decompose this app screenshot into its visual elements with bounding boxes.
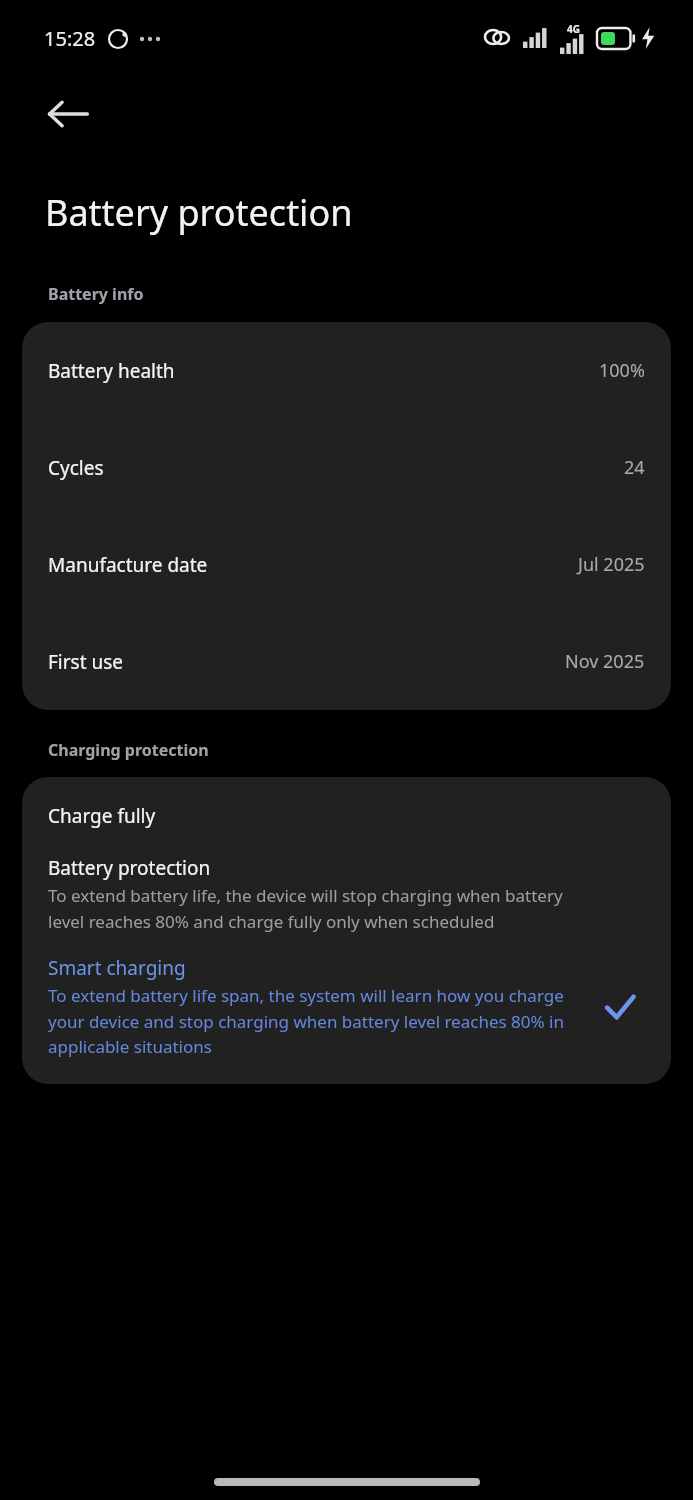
button[interactable]: Manufacture date [22,516,671,613]
staticText: Battery health [48,358,175,384]
button[interactable]: Smart charging [22,955,671,1058]
staticText: 100% [599,358,645,383]
staticText: Jul 2025 [578,552,645,577]
button[interactable]: Charge fully [22,777,671,855]
staticText: Smart charging [48,955,186,981]
staticText: To extend battery life, the device will … [48,884,589,933]
staticText: Charge fully [48,803,156,829]
staticText: 24 [624,455,645,480]
button[interactable]: Back [30,76,106,152]
staticText: Manufacture date [48,552,208,578]
button[interactable]: Cycles [22,419,671,516]
staticText: Nov 2025 [565,649,645,674]
staticText: 4G [567,22,580,36]
staticText: 15:28 [44,25,96,52]
staticText: To extend battery life span, the system … [48,984,589,1058]
staticText: Cycles [48,455,104,481]
staticText: Battery info [48,283,144,305]
staticText: Battery protection [45,188,353,237]
button[interactable]: Battery protection [22,855,671,933]
staticText: Charging protection [48,739,209,761]
button[interactable]: Battery health [22,322,671,419]
button[interactable]: First use [22,613,671,710]
staticText: First use [48,649,124,675]
staticText: Battery protection [48,855,211,881]
